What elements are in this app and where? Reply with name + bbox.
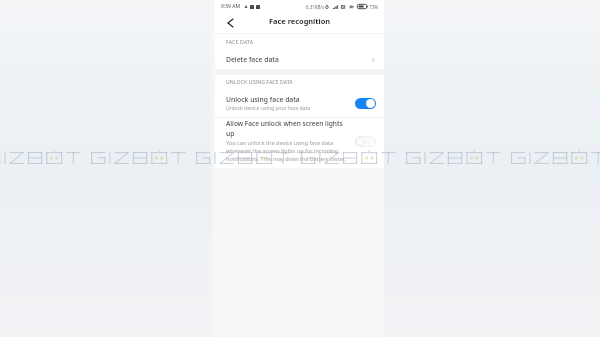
staticText: 6.31KB/s: [306, 4, 325, 10]
button[interactable]: Back: [223, 16, 237, 30]
staticText: UNLOCK USING FACE DATA: [226, 78, 293, 85]
staticText: Face recognition: [269, 16, 331, 26]
button[interactable]: Delete face data: [215, 49, 384, 70]
button[interactable]: [215, 117, 384, 167]
staticText: You can unlock the device using face dat…: [226, 139, 347, 163]
staticText: 9:59 AM: [221, 3, 241, 10]
staticText: FACE DATA: [226, 38, 254, 45]
staticText: 73%: [369, 4, 379, 10]
button[interactable]: Toggle off: [355, 136, 376, 147]
staticText: Allow Face unlock when screen lights up: [226, 119, 347, 138]
staticText: Delete face data: [226, 55, 279, 64]
staticText: Unlock device using your face data: [226, 104, 311, 111]
button[interactable]: [215, 88, 384, 116]
button[interactable]: Toggle on: [355, 98, 376, 109]
staticText: Unlock using face data: [226, 95, 300, 104]
